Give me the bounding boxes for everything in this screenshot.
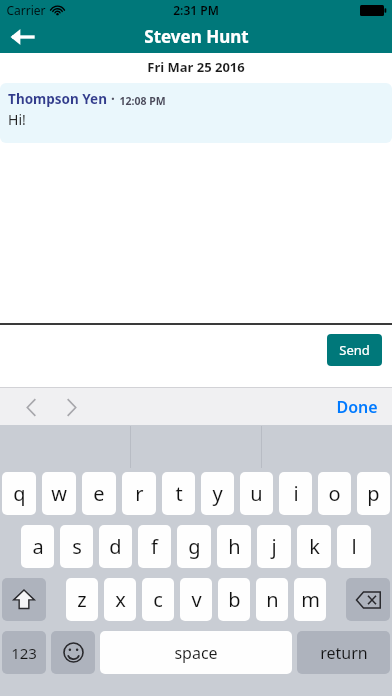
staticText: Hi! <box>8 110 26 129</box>
button[interactable]: Previous field <box>14 390 48 424</box>
staticText: return <box>320 642 368 664</box>
staticText: v <box>191 586 202 613</box>
button[interactable]: g <box>177 525 211 568</box>
staticText: n <box>266 586 279 613</box>
staticText: d <box>109 533 122 560</box>
staticText: b <box>228 586 241 613</box>
staticText: Done <box>336 396 378 418</box>
button[interactable]: j <box>257 525 291 568</box>
staticText: h <box>228 533 241 560</box>
staticText: o <box>328 480 341 507</box>
staticText: 123 <box>11 643 37 663</box>
staticText: r <box>135 480 144 507</box>
staticText: k <box>309 533 320 560</box>
button[interactable]: Backspace <box>346 578 390 621</box>
button[interactable]: e <box>82 472 116 515</box>
button[interactable]: y <box>201 472 234 515</box>
button[interactable]: q <box>2 472 36 515</box>
button[interactable]: p <box>357 472 390 515</box>
button[interactable]: c <box>142 578 174 621</box>
button[interactable]: d <box>99 525 132 568</box>
button[interactable]: f <box>138 525 171 568</box>
staticText: 12:08 PM <box>119 94 166 108</box>
staticText: e <box>93 480 105 507</box>
button[interactable]: Next field <box>54 390 88 424</box>
button[interactable]: z <box>66 578 98 621</box>
staticText: g <box>188 533 201 560</box>
staticText: Fri Mar 25 2016 <box>147 58 245 76</box>
staticText: f <box>151 533 158 560</box>
button[interactable]: i <box>279 472 312 515</box>
button[interactable]: k <box>297 525 331 568</box>
staticText: w <box>51 480 67 507</box>
staticText: space <box>174 642 218 664</box>
staticText: z <box>77 586 87 613</box>
staticText: c <box>153 586 163 613</box>
button[interactable]: a <box>21 525 54 568</box>
staticText: Send <box>339 341 370 359</box>
button[interactable]: t <box>162 472 195 515</box>
staticText: 2:31 PM <box>173 2 219 18</box>
button[interactable]: h <box>217 525 251 568</box>
staticText: p <box>367 480 380 507</box>
staticText: m <box>301 586 320 613</box>
staticText: · <box>111 90 115 108</box>
staticText: Thompson Yen <box>8 90 107 108</box>
button[interactable]: s <box>60 525 93 568</box>
staticText: y <box>212 480 223 507</box>
staticText: q <box>13 480 26 507</box>
button[interactable]: r <box>122 472 156 515</box>
button[interactable]: l <box>337 525 371 568</box>
button[interactable]: w <box>42 472 76 515</box>
button[interactable]: m <box>294 578 326 621</box>
button[interactable]: o <box>318 472 351 515</box>
staticText: a <box>32 533 44 560</box>
button[interactable]: Emoji <box>51 631 95 674</box>
button[interactable]: Shift <box>2 578 46 621</box>
staticText: i <box>293 480 299 507</box>
staticText: s <box>72 533 82 560</box>
staticText: Carrier <box>6 2 46 18</box>
staticText: Steven Hunt <box>144 25 249 48</box>
button[interactable]: n <box>256 578 288 621</box>
button[interactable]: x <box>104 578 136 621</box>
button[interactable]: Thompson Yen <box>0 83 392 143</box>
staticText: x <box>115 586 126 613</box>
button[interactable]: u <box>240 472 273 515</box>
button[interactable]: space <box>100 631 292 674</box>
staticText: t <box>175 480 183 507</box>
button[interactable]: Done <box>322 390 392 424</box>
button[interactable]: b <box>218 578 250 621</box>
button[interactable]: Send <box>327 334 382 366</box>
staticText: j <box>271 533 277 560</box>
button[interactable]: Back <box>0 20 46 53</box>
button[interactable]: return <box>297 631 390 674</box>
button[interactable]: 123 <box>2 631 46 674</box>
button[interactable]: v <box>180 578 212 621</box>
staticText: u <box>250 480 263 507</box>
staticText: l <box>351 533 357 560</box>
